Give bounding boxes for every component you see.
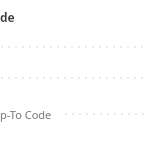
button[interactable]: Outline entry [0,67,144,89]
button[interactable]: de [0,9,15,25]
button[interactable]: Outline entry [0,36,144,58]
button[interactable]: p-To Code [0,103,144,127]
staticText: p-To Code [0,107,52,122]
staticText: de [0,9,15,25]
